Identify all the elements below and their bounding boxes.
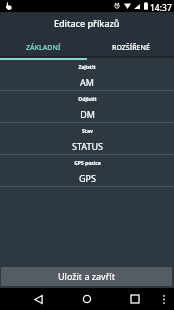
staticText: 14:37	[150, 2, 172, 14]
button[interactable]: ZÁKLADNÍ	[0, 37, 87, 59]
button[interactable]: Home	[69, 288, 105, 310]
button[interactable]: ROZŠÍŘENÉ	[87, 37, 174, 59]
button[interactable]: Zajistit	[0, 58, 174, 90]
staticText: Zajistit	[78, 64, 96, 71]
button[interactable]: Back	[20, 288, 57, 310]
button[interactable]: Uložit a zavřít	[1, 267, 172, 286]
staticText: Stav	[82, 128, 93, 135]
staticText: GPS pozice	[74, 160, 101, 167]
button[interactable]: GPS pozice	[0, 154, 174, 186]
button[interactable]: More options	[156, 288, 172, 310]
staticText: GPS	[79, 172, 96, 184]
staticText: Editace příkazů	[54, 17, 120, 29]
staticText: Uložit a zavřít	[58, 270, 115, 282]
staticText: ZÁKLADNÍ	[26, 43, 61, 53]
button[interactable]: Recent apps	[117, 288, 153, 310]
staticText: AM	[80, 76, 94, 88]
staticText: Odjistit	[78, 96, 97, 103]
button[interactable]: Odjistit	[0, 90, 174, 122]
staticText: ROZŠÍŘENÉ	[112, 43, 150, 53]
staticText: STATUS	[72, 140, 103, 152]
button[interactable]: Stav	[0, 122, 174, 154]
staticText: DM	[80, 108, 95, 120]
